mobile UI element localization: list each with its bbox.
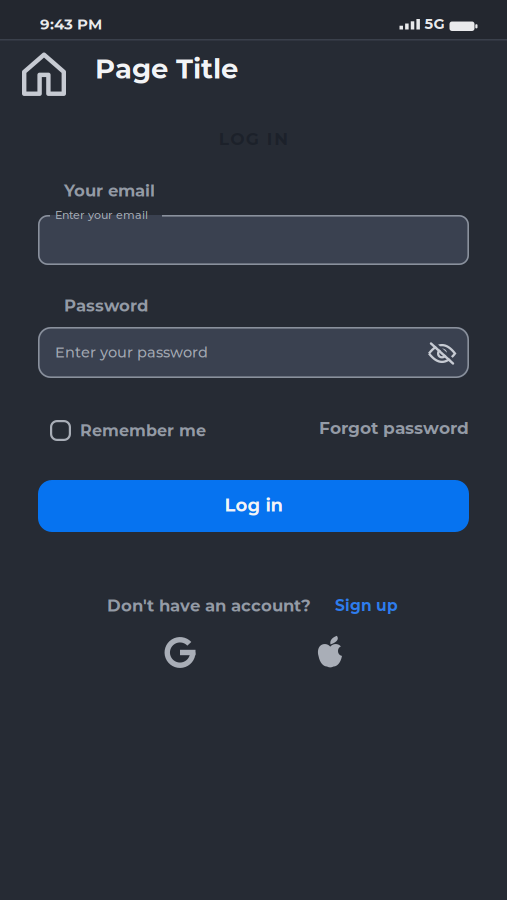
staticText: Enter your password <box>55 343 208 361</box>
staticText: Forgot password <box>319 417 469 438</box>
button[interactable]: Show password <box>428 343 456 364</box>
staticText: Enter your email <box>55 208 148 222</box>
staticText: 9:43 PM <box>40 15 102 33</box>
button[interactable]: Forgot password <box>319 417 469 438</box>
staticText: Password <box>64 295 148 316</box>
staticText: Page Title <box>95 52 238 85</box>
button[interactable]: Log in <box>38 480 469 532</box>
staticText: Log in <box>224 494 282 516</box>
button[interactable]: Home <box>22 53 66 95</box>
staticText: Your email <box>64 180 155 201</box>
button[interactable]: Remember me <box>50 420 206 441</box>
button[interactable]: Sign up <box>335 596 398 615</box>
staticText: LOG IN <box>219 128 288 149</box>
button[interactable]: Sign in with Google <box>164 637 195 668</box>
staticText: Remember me <box>80 421 206 440</box>
button[interactable]: Sign in with Apple <box>317 635 343 666</box>
staticText: 5G <box>424 15 444 33</box>
staticText: Don't have an account? <box>107 595 311 616</box>
staticText: Sign up <box>335 596 398 615</box>
